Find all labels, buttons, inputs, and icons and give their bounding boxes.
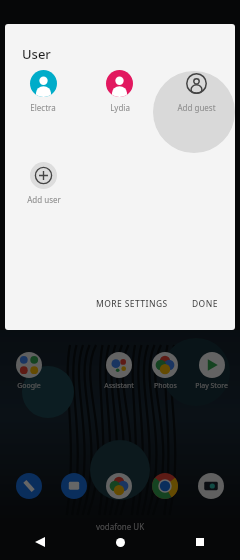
staticText: Electra: [30, 102, 56, 113]
button[interactable]: Electra: [5, 70, 81, 113]
button[interactable]: Google: [16, 352, 42, 391]
button[interactable]: Recent apps: [188, 530, 212, 554]
button[interactable]: [198, 473, 224, 499]
button[interactable]: [61, 473, 87, 499]
staticText: Assistant: [104, 381, 134, 391]
button[interactable]: [16, 473, 42, 499]
staticText: Add user: [27, 194, 61, 205]
button[interactable]: Add guest: [158, 70, 235, 113]
button[interactable]: Lydia: [81, 70, 158, 113]
button[interactable]: [106, 473, 132, 499]
button[interactable]: [152, 473, 178, 499]
staticText: vodafone UK: [0, 521, 240, 532]
button[interactable]: Home: [108, 530, 132, 554]
button[interactable]: Add user: [5, 162, 82, 205]
staticText: DONE: [192, 298, 218, 310]
button[interactable]: Back: [28, 530, 52, 554]
staticText: MORE SETTINGS: [96, 298, 168, 310]
staticText: Play Store: [195, 381, 228, 391]
button[interactable]: MORE SETTINGS: [92, 292, 172, 316]
button[interactable]: Assistant: [104, 352, 134, 391]
button[interactable]: DONE: [188, 292, 222, 316]
staticText: User: [22, 45, 51, 63]
staticText: Photos: [154, 381, 177, 391]
button[interactable]: Play Store: [195, 352, 228, 391]
staticText: Google: [17, 381, 41, 391]
staticText: Add guest: [177, 102, 216, 113]
staticText: Lydia: [110, 102, 130, 113]
button[interactable]: Photos: [152, 352, 178, 391]
